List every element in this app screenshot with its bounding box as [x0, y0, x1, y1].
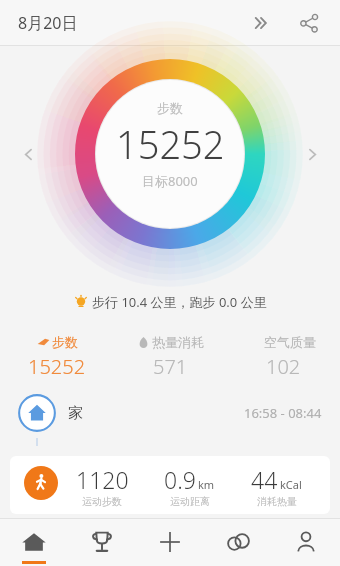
button[interactable]: Messages [204, 518, 272, 566]
button[interactable]: Profile [272, 518, 340, 566]
button[interactable]: 热量消耗 [114, 330, 227, 384]
button[interactable]: 1120 [10, 456, 330, 514]
staticText: 步行 10.4 公里，跑步 0.0 公里 [92, 293, 267, 311]
button[interactable]: Share [292, 6, 326, 40]
staticText: 571 [153, 353, 188, 380]
staticText: 热量消耗 [152, 334, 204, 350]
staticText: 44 [251, 464, 278, 495]
staticText: 15252 [28, 353, 86, 380]
button[interactable]: Next day [298, 140, 326, 168]
staticText: 运动步数 [82, 495, 122, 508]
button[interactable]: 家 [18, 394, 322, 432]
staticText: 消耗热量 [257, 495, 297, 508]
button[interactable]: 空气质量 [227, 330, 340, 384]
staticText: 1120 [76, 464, 129, 495]
button[interactable]: Achievements [68, 518, 136, 566]
staticText: 空气质量 [264, 334, 316, 350]
staticText: km [198, 477, 215, 492]
button[interactable]: Home [0, 518, 68, 566]
button[interactable]: Previous day [14, 140, 42, 168]
staticText: 运动距离 [170, 495, 210, 508]
staticText: 步数 [157, 100, 183, 116]
button[interactable]: More [244, 6, 278, 40]
staticText: 15252 [116, 118, 225, 170]
staticText: 0.9 [164, 464, 196, 495]
staticText: 家 [68, 404, 83, 423]
staticText: 8月20日 [18, 12, 78, 34]
staticText: 步数 [52, 334, 78, 350]
staticText: kCal [280, 477, 302, 492]
staticText: 16:58 - 08:44 [244, 404, 322, 422]
staticText: 目标8000 [142, 172, 198, 190]
staticText: 102 [266, 353, 301, 380]
button[interactable]: 步数 [0, 330, 114, 384]
button[interactable]: Add [136, 518, 204, 566]
